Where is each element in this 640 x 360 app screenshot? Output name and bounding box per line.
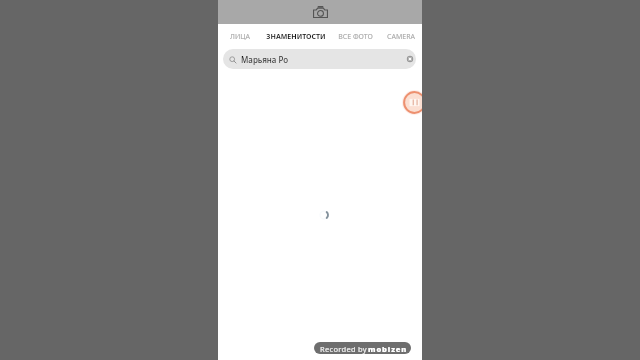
button[interactable]: Марьяна Ро [223, 49, 416, 69]
button[interactable]: ВСЕ ФОТО [330, 24, 380, 49]
button[interactable]: Camera [309, 3, 331, 21]
staticText: ЗНАМЕНИТОСТИ [266, 32, 326, 42]
button[interactable]: Clear search [404, 53, 416, 65]
staticText: Recorded by [320, 344, 367, 354]
staticText: ВСЕ ФОТО [338, 32, 373, 42]
staticText: mobizen [368, 344, 408, 354]
button[interactable]: ЗНАМЕНИТОСТИ [262, 24, 330, 49]
staticText: Марьяна Ро [241, 54, 289, 65]
staticText: CAMERA [387, 32, 415, 42]
button[interactable]: CAMERA [380, 24, 422, 49]
staticText: ЛИЦА [230, 32, 250, 42]
button[interactable]: ЛИЦА [218, 24, 262, 49]
